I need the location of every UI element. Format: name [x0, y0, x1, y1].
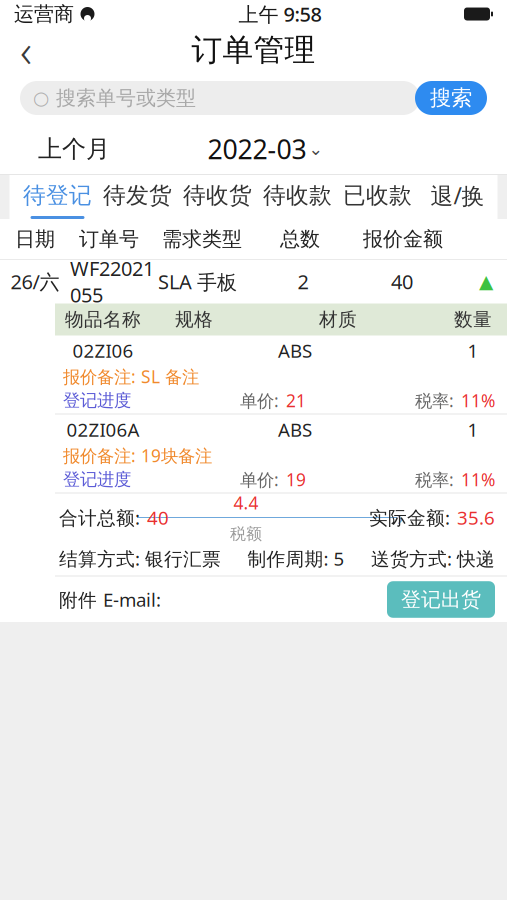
button[interactable]: 登记进度	[63, 469, 131, 490]
staticText: ○	[33, 87, 49, 109]
staticText: 税额	[230, 524, 262, 544]
staticText: 实际金额:	[369, 505, 455, 530]
button[interactable]: 退/换	[417, 175, 497, 219]
staticText: 总数	[280, 227, 320, 251]
staticText: 上个月	[38, 134, 110, 164]
staticText: 02ZI06	[72, 338, 133, 363]
button[interactable]: 上个月	[28, 128, 120, 170]
staticText: 合计总额:	[59, 505, 145, 530]
staticText: 订单管理	[191, 31, 315, 69]
staticText: 21	[286, 389, 306, 412]
button[interactable]: 登记出货	[387, 581, 495, 618]
staticText: 运营商	[14, 2, 74, 26]
staticText: 退/换	[430, 180, 484, 210]
staticText: SLA 手板	[158, 268, 237, 295]
staticText: 数量	[454, 308, 492, 331]
staticText: 规格	[175, 308, 213, 331]
staticText: 搜索	[430, 85, 472, 111]
staticText: 40	[147, 505, 169, 530]
staticText: 单价:	[240, 389, 284, 412]
staticText: 制作周期: 5	[247, 546, 344, 571]
staticText: WF22021055	[70, 255, 154, 308]
staticText: 26/六	[10, 268, 59, 295]
staticText: 1	[467, 417, 478, 442]
staticText: ABS	[278, 417, 312, 442]
staticText: 35.6	[457, 505, 495, 530]
staticText: 上午 9:58	[238, 1, 321, 27]
staticText: 报价金额	[363, 227, 443, 251]
staticText: 1	[467, 338, 478, 363]
staticText: 已收款	[343, 182, 412, 209]
staticText: 附件 E-mail:	[59, 587, 161, 612]
staticText: 报价备注: 19块备注	[63, 444, 212, 467]
staticText: 4.4	[233, 491, 258, 514]
staticText: 送货方式: 快递	[371, 546, 495, 571]
staticText: 需求类型	[162, 227, 242, 251]
staticText: ▲	[479, 271, 493, 292]
staticText: 搜索单号或类型	[56, 86, 196, 110]
staticText: 待收款	[263, 182, 332, 209]
button[interactable]: 2022-03	[207, 125, 323, 173]
button[interactable]: 待登记	[17, 175, 97, 219]
staticText: 结算方式: 银行汇票	[59, 546, 221, 571]
staticText: 待收货	[183, 182, 252, 209]
button[interactable]: 待收款	[257, 175, 337, 219]
staticText: 登记进度	[63, 390, 131, 411]
button[interactable]: 待发货	[97, 175, 177, 219]
staticText: 登记出货	[401, 587, 481, 612]
staticText: ‹	[20, 20, 32, 80]
staticText: 材质	[319, 308, 357, 331]
staticText: 11%	[461, 468, 495, 491]
staticText: 40	[391, 268, 413, 295]
button[interactable]: 返回	[0, 28, 52, 72]
staticText: 税率:	[415, 389, 459, 412]
staticText: 11%	[461, 389, 495, 412]
staticText: ›	[397, 504, 403, 531]
button[interactable]: 待收货	[177, 175, 257, 219]
staticText: 待发货	[103, 182, 172, 209]
staticText: ABS	[278, 338, 312, 363]
button[interactable]: 已收款	[337, 175, 417, 219]
button[interactable]: 26/六	[0, 259, 507, 303]
staticText: ⌄	[308, 139, 323, 159]
button[interactable]: 登记进度	[63, 390, 131, 411]
staticText: 单价:	[240, 468, 284, 491]
staticText: 登记进度	[63, 469, 131, 490]
staticText: 2	[297, 268, 308, 295]
staticText: 日期	[15, 227, 55, 251]
staticText: 报价备注: SL 备注	[63, 365, 199, 388]
staticText: 物品名称	[65, 308, 141, 331]
button[interactable]: 搜索	[415, 81, 487, 115]
staticText: 2022-03	[207, 131, 306, 167]
staticText: 订单号	[79, 227, 139, 251]
staticText: 待登记	[23, 182, 92, 209]
staticText: 税率:	[415, 468, 459, 491]
staticText: 02ZI06A	[66, 417, 139, 442]
staticText: 19	[286, 468, 306, 491]
